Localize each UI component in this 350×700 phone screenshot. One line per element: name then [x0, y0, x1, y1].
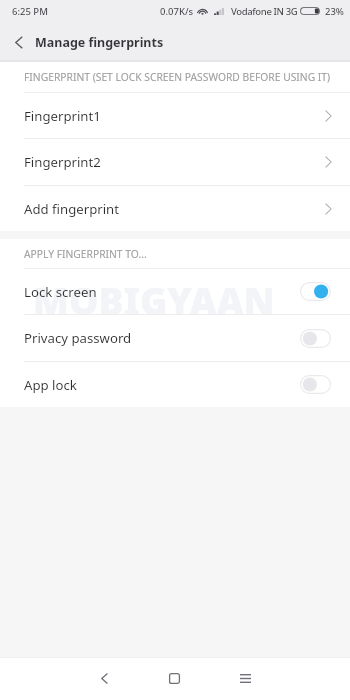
- staticText: APPLY FINGERPRINT TO...: [24, 247, 147, 261]
- button[interactable]: Lock screen: [0, 268, 350, 314]
- button[interactable]: Add fingerprint: [0, 185, 350, 231]
- staticText: Manage fingerprints: [35, 34, 164, 51]
- staticText: App lock: [24, 376, 77, 394]
- button[interactable]: App lock: [0, 361, 350, 407]
- staticText: FINGERPRINT (SET LOCK SCREEN PASSWORD BE…: [24, 70, 331, 84]
- staticText: 23%: [325, 5, 344, 18]
- button[interactable]: Home: [139, 657, 210, 700]
- button[interactable]: Privacy password: [0, 314, 350, 361]
- staticText: Add fingerprint: [24, 200, 120, 218]
- button[interactable]: Back: [0, 22, 38, 62]
- staticText: Fingerprint2: [24, 153, 101, 171]
- button[interactable]: Fingerprint1: [0, 92, 350, 138]
- staticText: 6:25 PM: [12, 5, 48, 18]
- staticText: MOBIGYAAN: [33, 275, 275, 325]
- staticText: Fingerprint1: [24, 107, 101, 125]
- button[interactable]: Fingerprint2: [0, 138, 350, 185]
- staticText: Vodafone IN 3G: [231, 5, 298, 18]
- staticText: Privacy password: [24, 329, 132, 347]
- button[interactable]: Back: [69, 657, 139, 700]
- button[interactable]: Recent apps: [210, 657, 281, 700]
- staticText: 0.07K/s: [160, 5, 194, 18]
- staticText: Lock screen: [24, 283, 97, 301]
